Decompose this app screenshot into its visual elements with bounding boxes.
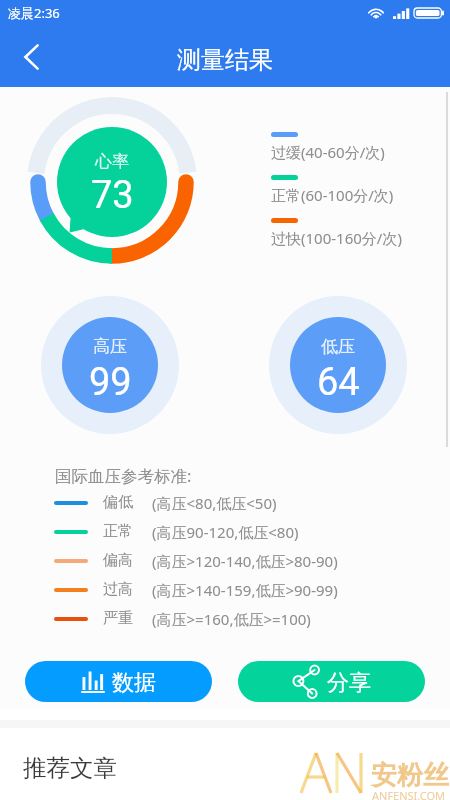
staticText: 国际血压参考标准: [55, 464, 192, 487]
staticText: (高压<80,低压<50) [152, 493, 277, 513]
staticText: (高压>120-140,低压>80-90) [152, 551, 338, 571]
staticText: 心率 [95, 151, 129, 172]
staticText: 正常(60-100分/次) [271, 185, 394, 205]
staticText: 低压 [321, 336, 355, 357]
staticText: (高压>=160,低压>=100) [152, 609, 311, 629]
staticText: 过缓(40-60分/次) [271, 142, 385, 162]
staticText: 64 [317, 360, 360, 405]
staticText: 73 [91, 173, 134, 218]
staticText: 99 [89, 360, 132, 405]
staticText: 分享 [327, 669, 371, 697]
staticText: (高压>140-159,低压>90-99) [152, 580, 338, 600]
staticText: (高压90-120,低压<80) [152, 522, 299, 542]
staticText: 测量结果 [177, 45, 273, 75]
staticText: 推荐文章 [23, 753, 117, 783]
button[interactable]: 分享 [238, 661, 425, 702]
staticText: 偏低 [103, 493, 133, 512]
button[interactable]: 数据 [25, 661, 212, 702]
staticText: 高压 [93, 336, 127, 357]
staticText: ANFENSI.COM [372, 788, 446, 800]
staticText: 严重 [103, 609, 133, 628]
staticText: 正常 [103, 522, 133, 541]
staticText: 数据 [112, 669, 156, 697]
button[interactable]: Back [10, 35, 53, 78]
staticText: 安粉丝 [371, 759, 449, 792]
staticText: 偏高 [103, 551, 133, 570]
staticText: 凌晨2:36 [8, 4, 60, 22]
staticText: 过快(100-160分/次) [271, 228, 402, 248]
staticText: 过高 [103, 580, 133, 599]
